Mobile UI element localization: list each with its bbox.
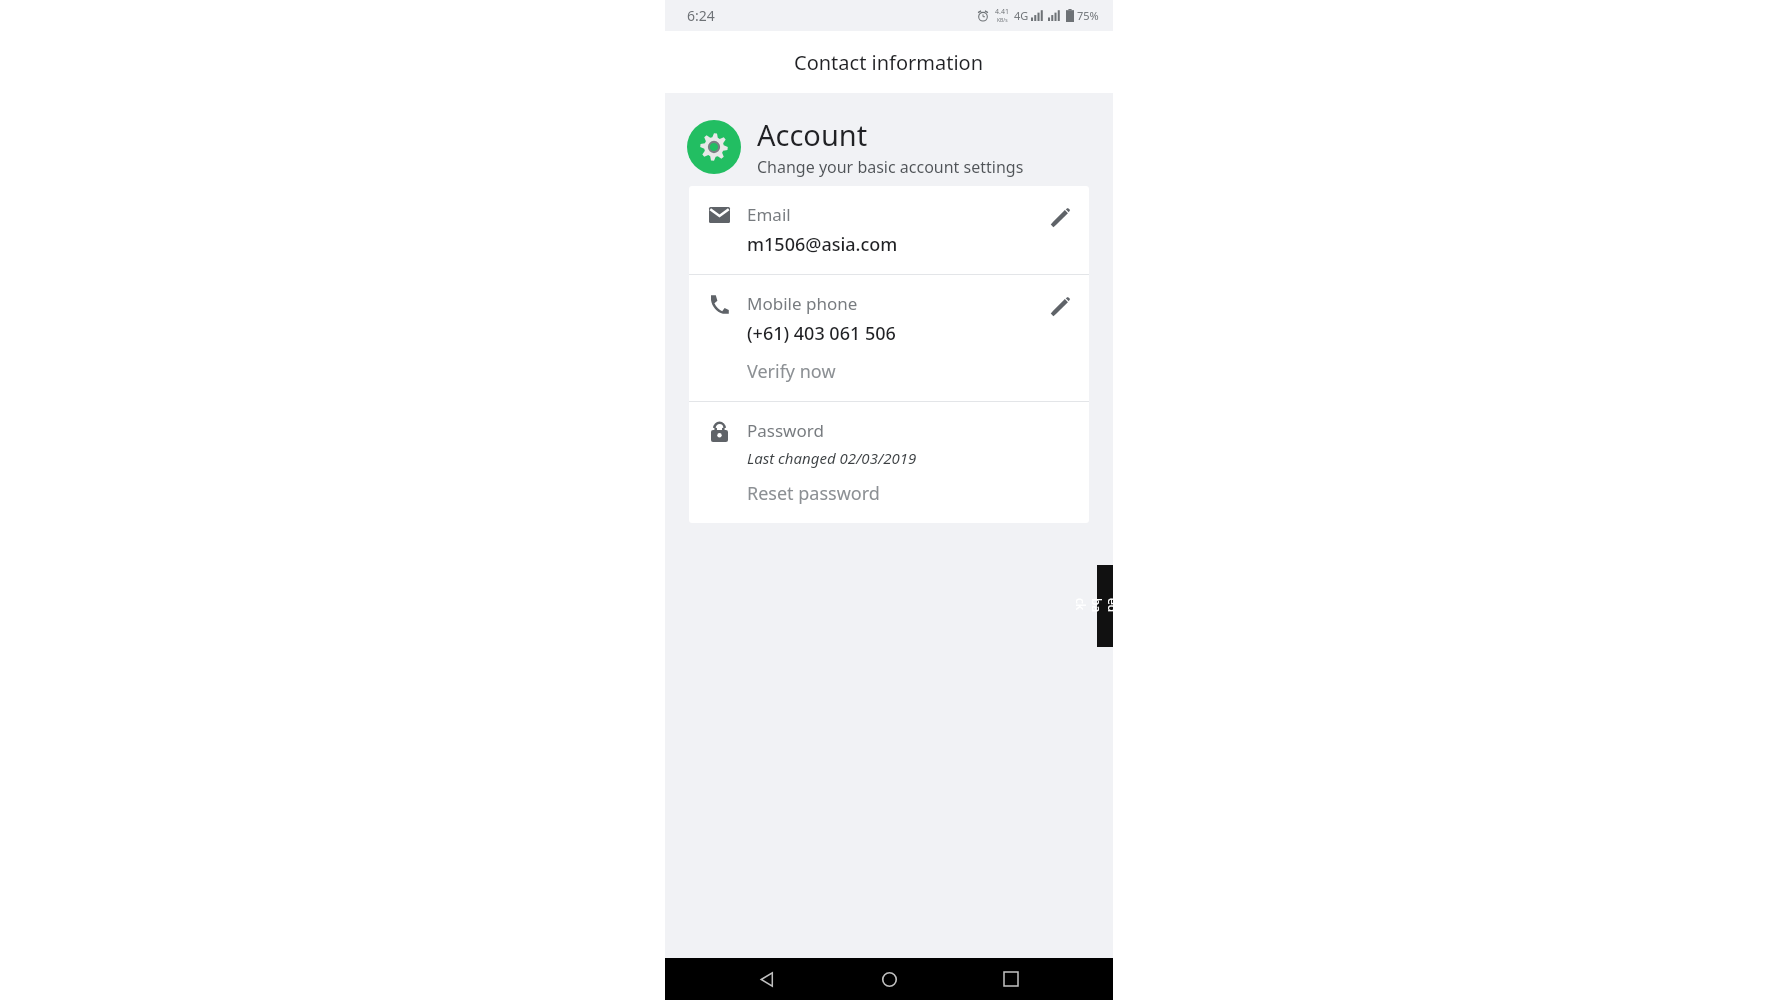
staticText: Email xyxy=(747,203,791,226)
staticText: Feedback xyxy=(1073,598,1137,614)
staticText: KB/s xyxy=(997,17,1008,24)
button[interactable]: Recents xyxy=(991,959,1031,999)
button[interactable]: Back xyxy=(747,959,787,999)
staticText: Contact information xyxy=(794,49,984,76)
button[interactable]: Password xyxy=(689,402,1089,523)
staticText: Reset password xyxy=(747,481,880,506)
staticText: Password xyxy=(747,419,824,442)
staticText: Verify now xyxy=(747,359,836,384)
button[interactable]: Edit mobile phone xyxy=(1045,292,1075,322)
button[interactable]: Home xyxy=(869,959,909,999)
staticText: (+61) 403 061 506 xyxy=(747,321,896,346)
staticText: 4.41 xyxy=(995,7,1009,17)
button[interactable]: Email xyxy=(689,186,1089,274)
staticText: Change your basic account settings xyxy=(757,156,1024,178)
button[interactable]: Edit email xyxy=(1045,203,1075,233)
button[interactable]: Feedback xyxy=(1097,565,1113,647)
staticText: 75% xyxy=(1077,8,1099,23)
staticText: Account xyxy=(757,115,868,154)
button[interactable]: Verify now xyxy=(747,359,836,384)
staticText: Mobile phone xyxy=(747,292,858,315)
staticText: 4G xyxy=(1014,8,1029,23)
staticText: m1506@asia.com xyxy=(747,232,898,257)
staticText: 6:24 xyxy=(687,6,715,25)
button[interactable]: Mobile phone xyxy=(689,275,1089,401)
button[interactable]: Reset password xyxy=(747,481,880,506)
staticText: Last changed 02/03/2019 xyxy=(747,448,917,468)
